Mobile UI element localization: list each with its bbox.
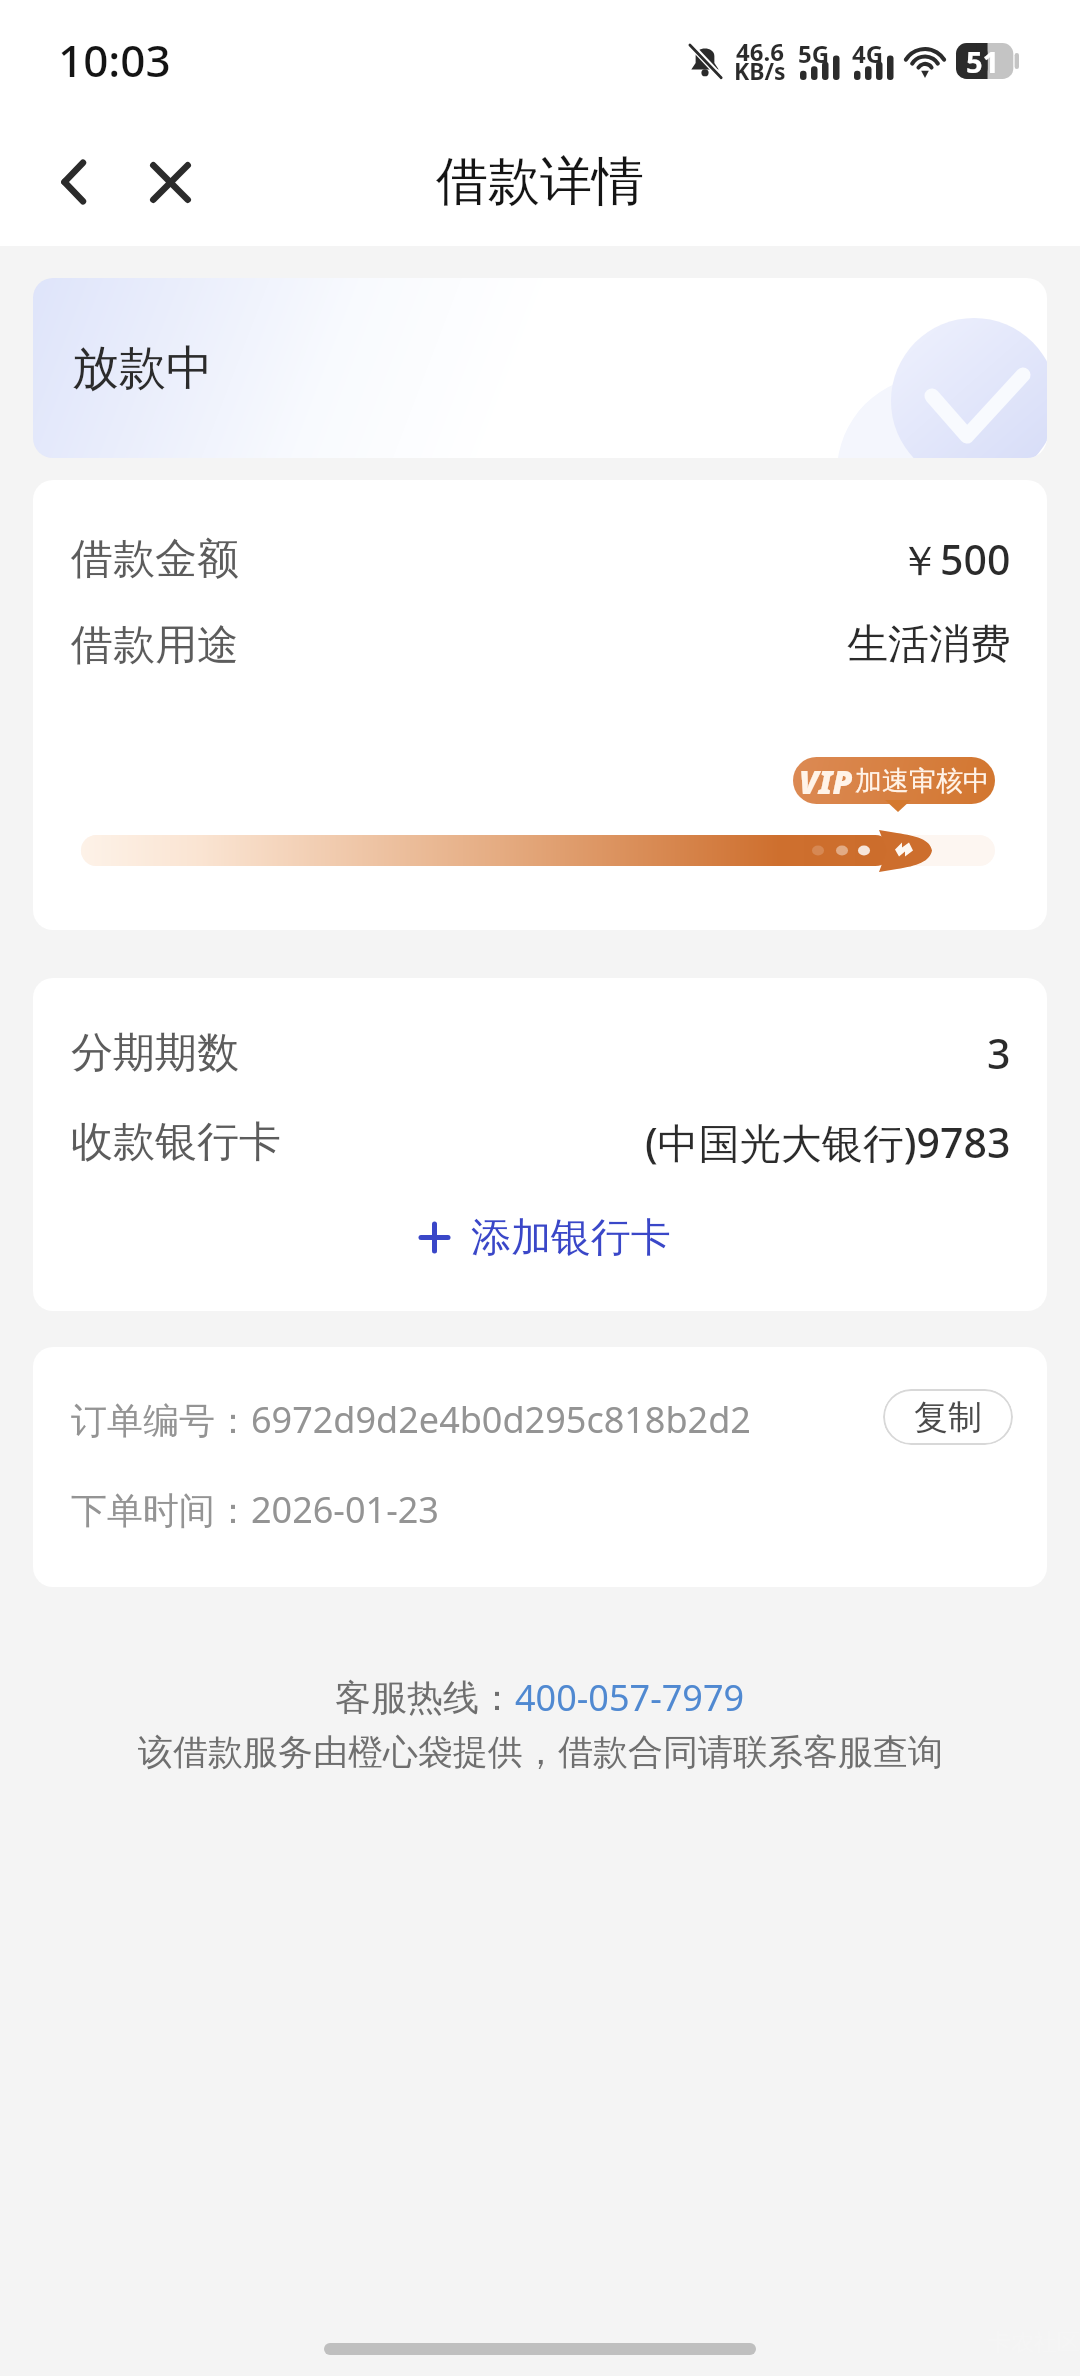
button[interactable]: 收款银行卡 xyxy=(33,1112,1047,1172)
staticText: 分期期数 xyxy=(71,1027,239,1080)
staticText: 5G xyxy=(798,37,830,70)
staticText: (中国光大银行)9783 xyxy=(645,1114,1011,1170)
staticText: 生活消费 xyxy=(847,619,1011,671)
staticText: ￥500 xyxy=(899,531,1011,587)
staticText: 3 xyxy=(987,1025,1011,1081)
staticText: 加速审核中 xyxy=(855,764,990,798)
button[interactable]: Back xyxy=(38,146,110,218)
button[interactable]: VIP xyxy=(793,757,995,804)
staticText: 46.6 xyxy=(736,35,784,68)
staticText: KB/s xyxy=(734,55,786,86)
staticText: 下单时间：2026-01-23 xyxy=(71,1485,439,1534)
staticText: 客服热线： xyxy=(335,1675,515,1720)
staticText: 复制 xyxy=(914,1396,982,1439)
staticText: 借款用途 xyxy=(71,619,239,672)
staticText: 51 xyxy=(966,42,1000,78)
staticText: 借款金额 xyxy=(71,533,239,586)
staticText: 收款银行卡 xyxy=(71,1116,281,1169)
button[interactable]: 400-057-7979 xyxy=(515,1673,745,1722)
staticText: 借款详情 xyxy=(436,149,644,215)
button[interactable]: 放款中 xyxy=(33,278,1047,458)
staticText: 订单编号：6972d9d2e4b0d295c818b2d2 xyxy=(71,1395,751,1444)
staticText: VIP xyxy=(799,760,853,804)
staticText: 该借款服务由橙心袋提供，借款合同请联系客服查询 xyxy=(138,1730,943,1774)
button[interactable]: 复制 xyxy=(883,1389,1013,1445)
staticText: 4G xyxy=(852,37,884,70)
button[interactable]: Close xyxy=(134,146,206,218)
staticText: 添加银行卡 xyxy=(471,1212,671,1262)
button[interactable]: 添加银行卡 xyxy=(399,1204,691,1270)
staticText: 10:03 xyxy=(58,30,171,90)
staticText: 放款中 xyxy=(72,339,213,398)
